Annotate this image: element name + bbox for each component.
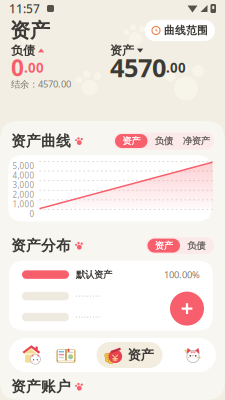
staticText: 曲线范围 [164, 24, 208, 37]
staticText: 0 [11, 52, 24, 82]
staticText: 净资产 [183, 135, 210, 147]
button[interactable]: 资产 [147, 239, 180, 253]
staticText: 1,000 [12, 199, 34, 209]
staticText: 负债 [187, 240, 205, 251]
button[interactable]: 新增资产 [170, 292, 204, 326]
staticText: 5,000 [12, 160, 34, 171]
button[interactable]: 我的 [176, 341, 210, 369]
staticText: .00 [24, 59, 44, 76]
button[interactable]: 首页 [15, 341, 49, 369]
staticText: 资产 [110, 43, 134, 58]
button[interactable]: 账本 [49, 341, 83, 369]
staticText: 资产曲线 [11, 132, 71, 150]
staticText: 2,000 [12, 189, 34, 200]
button[interactable]: 曲线范围 [144, 20, 215, 41]
staticText: 资产 [10, 18, 50, 43]
staticText: 负债 [155, 135, 173, 147]
staticText: 资产 [127, 347, 153, 363]
button[interactable]: 资产 [96, 342, 162, 368]
staticText: 资产 [122, 135, 140, 147]
button[interactable]: 负债 [180, 239, 212, 253]
staticText: 100.00% [164, 268, 200, 281]
button[interactable]: 负债 [147, 134, 180, 148]
button[interactable]: 资产 [115, 134, 147, 148]
staticText: 结余：4570.00 [11, 78, 71, 90]
button[interactable]: 净资产 [180, 134, 212, 148]
staticText: 4570 [110, 51, 166, 84]
staticText: .00 [166, 59, 186, 76]
staticText: 资产 [155, 240, 173, 251]
staticText: 负债 [11, 43, 35, 58]
staticText: 3,000 [12, 180, 34, 190]
staticText: 资产分布 [11, 237, 71, 255]
staticText: 0 [29, 208, 34, 219]
staticText: 默认资产 [76, 269, 112, 280]
staticText: 资产账户 [11, 378, 71, 396]
staticText: 4,000 [12, 170, 34, 181]
staticText: 11:57 [9, 0, 40, 16]
